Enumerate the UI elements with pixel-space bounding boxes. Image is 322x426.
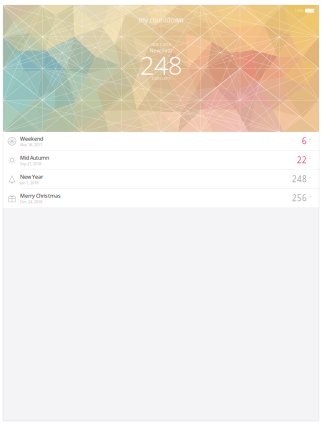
button[interactable]: Weekend [3, 132, 319, 150]
button[interactable]: Mid Autumn [3, 151, 319, 169]
staticText: 9:41 PM [154, 8, 168, 13]
staticText: New Year [20, 173, 43, 180]
button[interactable]: Merry Christmas [3, 189, 319, 207]
staticText: Mid Autumn [20, 154, 49, 161]
staticText: New Year [149, 47, 172, 54]
staticText: 6 [302, 136, 307, 146]
staticText: DAYS LEFT [152, 76, 170, 81]
staticText: 248 [292, 174, 307, 184]
staticText: ° [309, 137, 311, 144]
staticText: Weekend [20, 135, 43, 142]
staticText: ° [309, 156, 311, 163]
staticText: 248 [140, 48, 182, 82]
staticText: 22 [297, 155, 307, 165]
staticText: my countdown [138, 16, 183, 24]
staticText: 256 [292, 193, 307, 203]
staticText: ° [309, 194, 311, 201]
button[interactable]: New Year [3, 170, 319, 188]
staticText: 100% [294, 8, 303, 13]
staticText: Jan 1, 2018 [20, 180, 38, 185]
staticText: Merry Christmas [20, 192, 61, 199]
staticText: JAN 1 2018 [151, 42, 170, 47]
staticText: ° [309, 175, 311, 182]
staticText: Nov 18, 2017 [20, 142, 42, 147]
staticText: Sep 21, 2018 [20, 161, 41, 166]
staticText: Dec 24, 2018 [20, 199, 42, 204]
